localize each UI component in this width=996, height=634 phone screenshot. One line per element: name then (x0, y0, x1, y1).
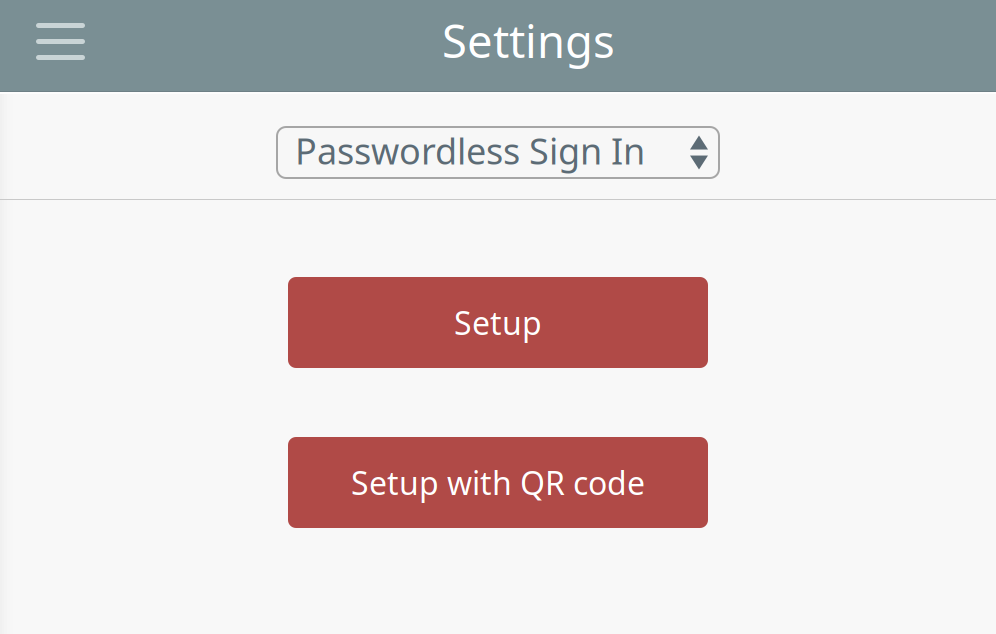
button[interactable]: Passwordless Sign In (277, 127, 719, 178)
staticText: Setup with QR code (351, 461, 645, 504)
button[interactable]: Setup (288, 277, 708, 368)
button[interactable]: Menu (0, 0, 109, 91)
staticText: Settings (442, 10, 615, 71)
staticText: Passwordless Sign In (295, 127, 645, 174)
button[interactable]: Setup with QR code (288, 437, 708, 528)
staticText: Setup (454, 301, 542, 344)
